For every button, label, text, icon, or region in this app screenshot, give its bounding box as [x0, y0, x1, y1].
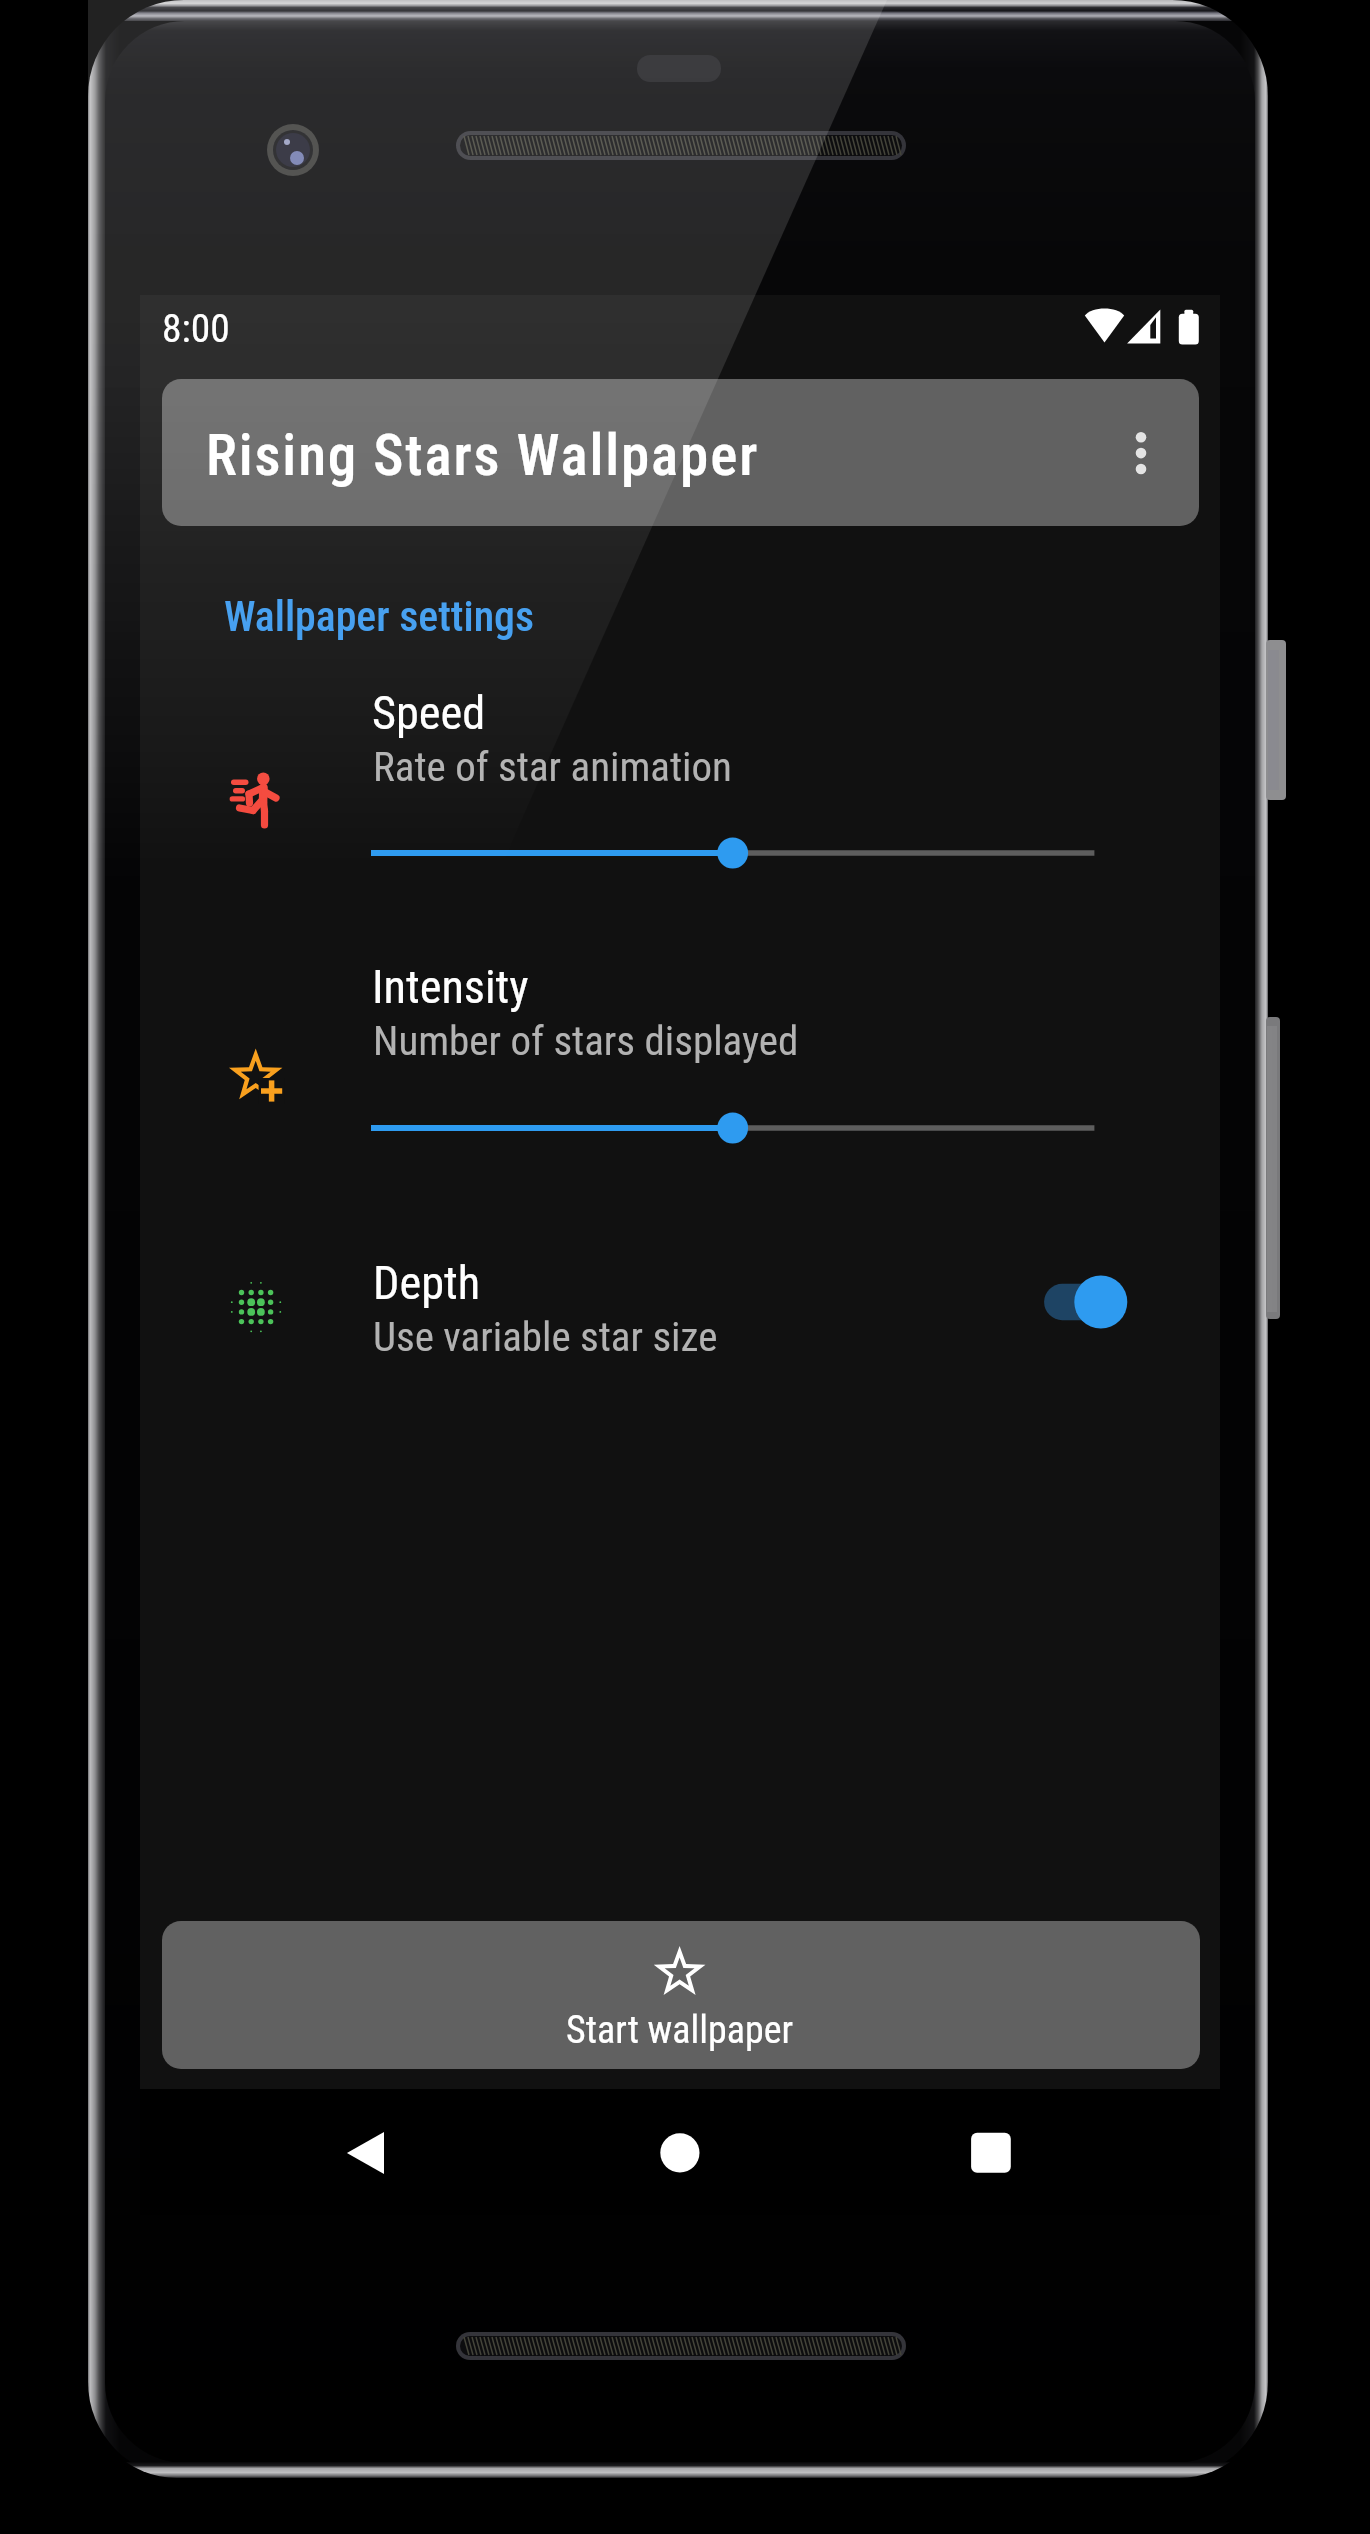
button[interactable]: [196, 950, 1220, 1150]
staticText: Depth: [373, 1256, 481, 1310]
button[interactable]: [196, 675, 1220, 875]
button[interactable]: More options: [1101, 413, 1181, 493]
button[interactable]: Recent apps: [950, 2111, 1034, 2195]
button[interactable]: [196, 1245, 1220, 1385]
staticText: 8:00: [162, 305, 230, 351]
button[interactable]: [162, 1921, 1200, 2069]
button[interactable]: [162, 379, 1199, 526]
staticText: Speed: [372, 686, 486, 740]
button[interactable]: Slider: [355, 831, 1115, 875]
staticText: Start wallpaper: [566, 2008, 794, 2053]
button[interactable]: Home: [639, 2111, 723, 2195]
staticText: Number of stars displayed: [373, 1017, 799, 1065]
button[interactable]: Depth toggle: [1035, 1272, 1145, 1332]
button[interactable]: Slider: [355, 1106, 1115, 1150]
staticText: Wallpaper settings: [224, 592, 535, 641]
staticText: Use variable star size: [373, 1313, 718, 1361]
staticText: Rising Stars Wallpaper: [206, 422, 760, 489]
staticText: Intensity: [372, 960, 529, 1014]
button[interactable]: Back: [323, 2111, 407, 2195]
staticText: Rate of star animation: [373, 743, 732, 791]
